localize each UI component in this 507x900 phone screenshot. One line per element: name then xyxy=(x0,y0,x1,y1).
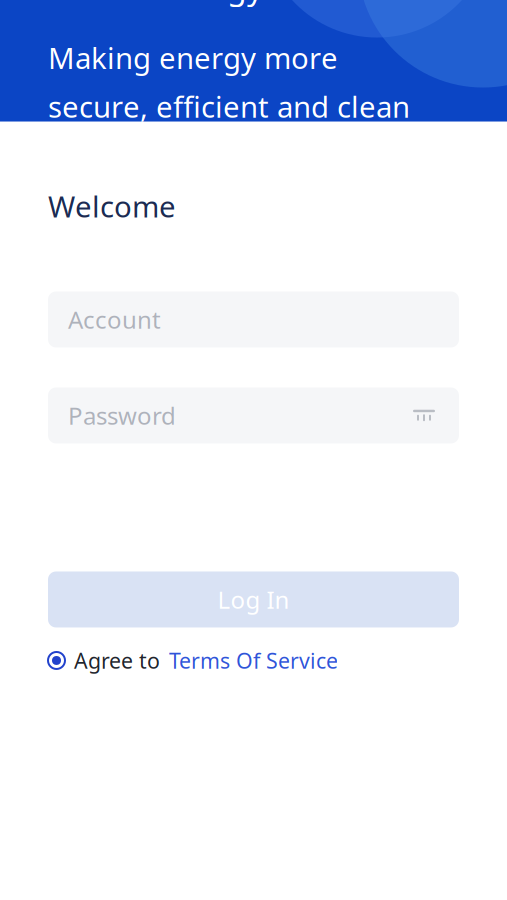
button[interactable]: Show password xyxy=(409,400,439,430)
button[interactable]: Log In xyxy=(48,571,459,627)
staticText: Password xyxy=(68,399,176,431)
staticText: Making energy more xyxy=(48,38,338,77)
staticText: Terms Of Service xyxy=(169,646,338,675)
staticText: Welcome xyxy=(48,186,176,225)
staticText: Account xyxy=(68,303,161,335)
staticText: secure, efficient and clean xyxy=(48,87,410,126)
button[interactable]: Agree to xyxy=(48,645,459,675)
staticText: Wanke Energy xyxy=(48,0,263,8)
staticText: Log In xyxy=(217,583,289,615)
staticText: Agree to xyxy=(74,646,160,675)
